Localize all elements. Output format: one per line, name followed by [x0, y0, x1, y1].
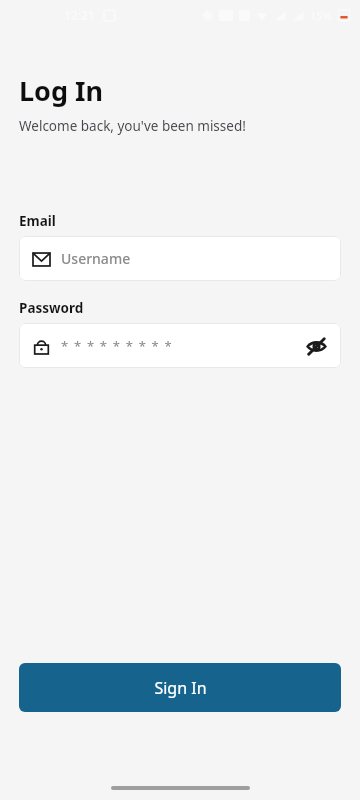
staticText: Password [19, 299, 84, 317]
staticText: Email [19, 212, 56, 230]
button[interactable]: Toggle password visibility [303, 333, 329, 359]
button[interactable]: Sign In [19, 663, 341, 712]
staticText: Welcome back, you've been missed! [19, 117, 246, 135]
staticText: Log In [19, 72, 104, 109]
staticText: Sign In [154, 677, 207, 699]
button[interactable]: Username [19, 236, 341, 281]
staticText: Username [61, 249, 329, 268]
staticText: * * * * * * * * * [61, 337, 303, 355]
button[interactable]: * * * * * * * * * [19, 323, 341, 368]
